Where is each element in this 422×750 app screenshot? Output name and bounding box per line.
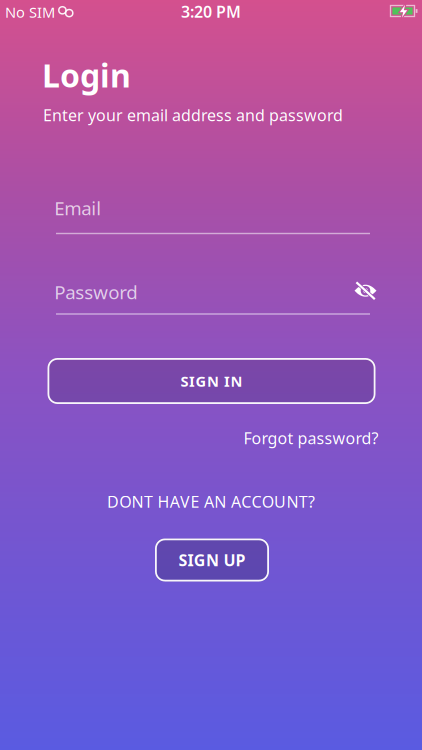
staticText: Login: [42, 54, 131, 96]
button[interactable]: Forgot password?: [243, 427, 378, 449]
staticText: Email: [54, 196, 101, 220]
staticText: Enter your email address and password: [43, 104, 343, 126]
button[interactable]: Email: [54, 192, 368, 242]
button[interactable]: SIGN UP: [155, 538, 269, 581]
staticText: DONT HAVE AN ACCOUNT?: [107, 491, 315, 512]
staticText: SIGN UP: [178, 549, 246, 571]
button[interactable]: Show password: [352, 278, 378, 302]
staticText: Password: [54, 280, 137, 304]
staticText: No SIM: [5, 2, 55, 22]
staticText: 3:20 PM: [181, 1, 241, 22]
button[interactable]: Password: [54, 272, 368, 322]
button[interactable]: SIGN IN: [47, 358, 375, 404]
staticText: Forgot password?: [243, 427, 378, 449]
staticText: SIGN IN: [180, 371, 242, 391]
